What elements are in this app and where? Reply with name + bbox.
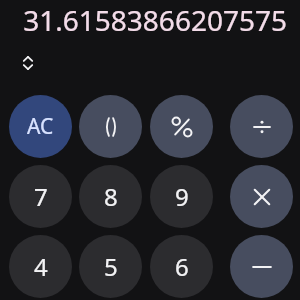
button[interactable]: 4 xyxy=(9,235,72,298)
staticText: 8 xyxy=(104,180,118,213)
staticText: 5 xyxy=(104,250,118,283)
button[interactable]: 8 xyxy=(79,165,142,228)
button[interactable]: 6 xyxy=(150,235,213,298)
staticText: 31.61583866207575 xyxy=(0,1,287,300)
staticText: 6 xyxy=(175,250,189,283)
other: Percent xyxy=(170,115,194,139)
button[interactable]: Percent xyxy=(150,95,213,158)
staticText: 4 xyxy=(34,250,48,283)
other: Parentheses xyxy=(98,114,124,140)
staticText: AC xyxy=(27,112,54,141)
button[interactable]: 7 xyxy=(9,165,72,228)
button[interactable]: Parentheses xyxy=(79,95,142,158)
button[interactable]: Divide xyxy=(230,95,293,158)
staticText: 9 xyxy=(175,180,189,213)
button[interactable]: Minus xyxy=(230,235,293,298)
button[interactable]: 31.61583866207575 xyxy=(0,1,287,300)
button[interactable]: 5 xyxy=(79,235,142,298)
button[interactable]: Expand history xyxy=(16,51,40,75)
button[interactable]: Multiply xyxy=(230,165,293,228)
button[interactable]: 9 xyxy=(150,165,213,228)
other: Multiply xyxy=(251,186,273,208)
staticText: 7 xyxy=(34,180,48,213)
other: Minus xyxy=(250,255,274,279)
other: Divide xyxy=(250,115,274,139)
button[interactable]: All clear xyxy=(9,95,72,158)
other: All clear xyxy=(27,112,54,141)
